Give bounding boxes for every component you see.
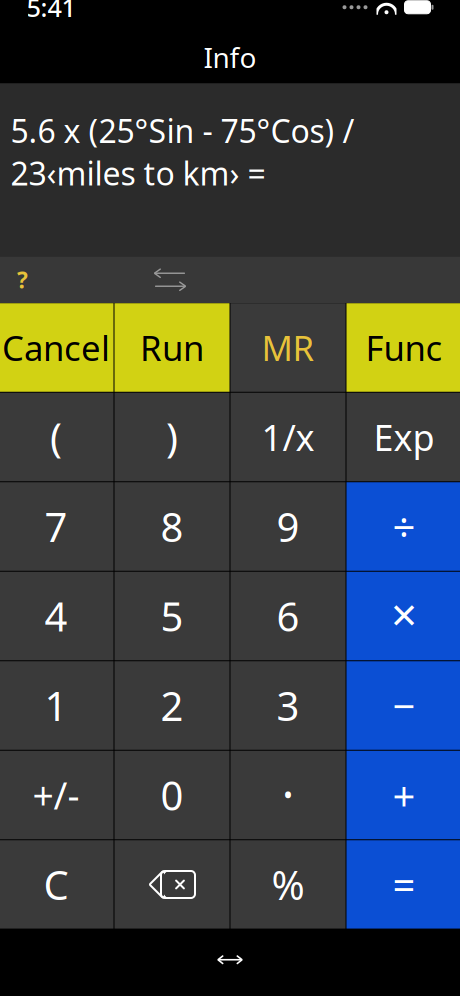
staticText: 9 bbox=[276, 500, 299, 553]
button[interactable]: 5 bbox=[114, 572, 229, 660]
button[interactable]: Resize bbox=[200, 943, 260, 977]
button[interactable]: 1/x bbox=[230, 393, 345, 481]
staticText: Info bbox=[203, 39, 256, 76]
button[interactable]: 9 bbox=[230, 482, 345, 571]
button[interactable]: = bbox=[346, 840, 460, 929]
button[interactable]: Func bbox=[346, 303, 460, 392]
staticText: ? bbox=[17, 265, 28, 295]
staticText: ( bbox=[50, 410, 62, 463]
staticText: 3 bbox=[276, 679, 299, 732]
button[interactable]: +/- bbox=[0, 751, 113, 839]
button[interactable]: 4 bbox=[0, 572, 113, 660]
button[interactable]: 1 bbox=[0, 661, 113, 750]
button[interactable]: Help bbox=[2, 256, 42, 303]
button[interactable]: 7 bbox=[0, 482, 113, 571]
staticText: Exp bbox=[373, 413, 434, 461]
button[interactable]: + bbox=[346, 751, 460, 839]
staticText: Run bbox=[140, 324, 204, 370]
button[interactable]: C bbox=[0, 840, 113, 929]
staticText: % bbox=[271, 858, 304, 911]
button[interactable]: • bbox=[230, 751, 345, 839]
button[interactable]: Run bbox=[114, 303, 229, 392]
staticText: 0 bbox=[160, 768, 183, 821]
staticText: • bbox=[283, 777, 293, 813]
staticText: 7 bbox=[44, 500, 67, 553]
staticText: 2 bbox=[160, 679, 183, 732]
staticText: 5.6 x (25°Sin - 75°Cos) / 23‹miles to km… bbox=[10, 109, 354, 194]
button[interactable]: ( bbox=[0, 393, 113, 481]
staticText: 5 bbox=[160, 589, 183, 642]
staticText: MR bbox=[261, 324, 314, 370]
staticText: 6 bbox=[276, 589, 299, 642]
staticText: ) bbox=[166, 410, 178, 463]
button[interactable]: Delete bbox=[114, 840, 229, 929]
button[interactable]: 0 bbox=[114, 751, 229, 839]
button[interactable]: 6 bbox=[230, 572, 345, 660]
staticText: 5:41 bbox=[26, 0, 75, 24]
staticText: 1/x bbox=[261, 413, 314, 461]
staticText: Cancel bbox=[2, 324, 110, 370]
staticText: = bbox=[392, 858, 415, 911]
button[interactable]: ✕ bbox=[346, 572, 460, 660]
button[interactable]: MR bbox=[230, 303, 345, 392]
button[interactable]: Cancel bbox=[0, 303, 113, 392]
staticText: Func bbox=[365, 324, 442, 370]
staticText: 1 bbox=[44, 679, 67, 732]
staticText: − bbox=[392, 679, 415, 732]
button[interactable]: % bbox=[230, 840, 345, 929]
staticText: ✕ bbox=[389, 596, 418, 636]
button[interactable]: 2 bbox=[114, 661, 229, 750]
staticText: ÷ bbox=[392, 500, 415, 553]
staticText: + bbox=[392, 768, 415, 821]
staticText: C bbox=[43, 858, 68, 911]
button[interactable]: 3 bbox=[230, 661, 345, 750]
staticText: 8 bbox=[160, 500, 183, 553]
button[interactable]: ÷ bbox=[346, 482, 460, 571]
button[interactable]: ) bbox=[114, 393, 229, 481]
staticText: +/- bbox=[32, 770, 79, 820]
button[interactable]: 8 bbox=[114, 482, 229, 571]
button[interactable]: Exp bbox=[346, 393, 460, 481]
staticText: 4 bbox=[44, 589, 67, 642]
button[interactable]: − bbox=[346, 661, 460, 750]
button[interactable]: Swap bbox=[142, 256, 198, 303]
